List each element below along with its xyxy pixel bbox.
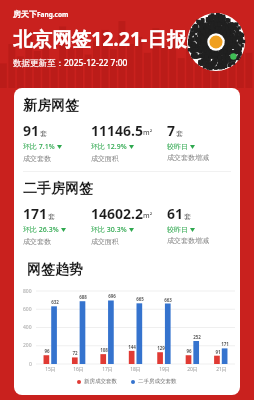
staticText: 成交套数 [23, 237, 51, 246]
staticText: 环比 12.9% [91, 142, 127, 152]
staticText: 171 [221, 341, 229, 347]
staticText: 17日 [102, 366, 113, 373]
staticText: 成交面积 [91, 237, 119, 246]
staticText: 15日 [45, 366, 56, 373]
staticText: 成交套数 [23, 154, 51, 163]
button[interactable]: 14602.2 [91, 204, 167, 246]
staticText: 663 [164, 297, 172, 303]
staticText: 14602.2 [91, 204, 143, 223]
staticText: 环比 30.3% [91, 225, 127, 235]
staticText: 成交套数增减 [167, 236, 209, 245]
staticText: 91 [23, 121, 40, 140]
button[interactable]: 11146.5 [91, 121, 167, 163]
staticText: 7 [167, 121, 176, 140]
staticText: 二手房成交套数 [138, 378, 177, 385]
staticText: 20日 [187, 366, 198, 373]
staticText: 18日 [130, 366, 141, 373]
button[interactable]: 61 [167, 204, 231, 245]
staticText: 96 [44, 348, 50, 354]
staticText: 套 [184, 212, 191, 221]
staticText: 套 [48, 212, 55, 221]
staticText: 108 [100, 347, 108, 353]
staticText: 成交套数增减 [167, 153, 209, 162]
staticText: 0 [29, 361, 32, 368]
staticText: 较昨日 [167, 142, 188, 151]
staticText: 二手房网签 [23, 180, 93, 198]
staticText: 688 [79, 294, 87, 300]
staticText: 环比 7.1% [23, 142, 55, 152]
staticText: m² [143, 128, 153, 138]
staticText: 11146.5 [91, 121, 143, 140]
button[interactable]: 新房成交套数 [77, 378, 117, 385]
staticText: 72 [72, 350, 78, 356]
staticText: 16日 [73, 366, 84, 373]
staticText: 21日 [216, 366, 227, 373]
staticText: m² [143, 211, 153, 221]
button[interactable]: 171 [23, 204, 91, 246]
staticText: 环比 26.3% [23, 225, 59, 235]
staticText: 新房成交套数 [84, 378, 117, 385]
staticText: 北京网签12.21-日报 [13, 25, 187, 52]
button[interactable]: 二手房成交套数 [131, 378, 177, 385]
staticText: 252 [193, 334, 201, 340]
staticText: 800 [23, 288, 32, 295]
staticText: 91 [215, 349, 221, 355]
staticText: Fang.com [37, 10, 69, 19]
button[interactable]: 91 [23, 121, 91, 163]
button[interactable]: 7 [167, 121, 231, 162]
staticText: 632 [51, 299, 59, 305]
staticText: 400 [23, 324, 32, 331]
staticText: 较昨日 [167, 225, 188, 234]
staticText: 171 [23, 204, 48, 223]
staticText: 19日 [159, 366, 170, 373]
staticText: 网签趋势 [27, 261, 83, 279]
staticText: 665 [136, 296, 144, 302]
button[interactable]: 扫描二维码 [187, 13, 245, 71]
staticText: 600 [23, 306, 32, 313]
staticText: 696 [108, 293, 116, 299]
staticText: 房天下 [13, 9, 37, 19]
staticText: 96 [186, 348, 192, 354]
staticText: 129 [157, 345, 165, 351]
staticText: 新房网签 [23, 97, 79, 115]
staticText: 成交面积 [91, 154, 119, 163]
staticText: 数据更新至：2025-12-22 7:00 [13, 57, 128, 69]
staticText: 套 [176, 129, 183, 138]
staticText: 144 [128, 344, 136, 350]
staticText: 61 [167, 204, 184, 223]
staticText: 200 [23, 342, 32, 349]
staticText: 套 [40, 129, 47, 138]
